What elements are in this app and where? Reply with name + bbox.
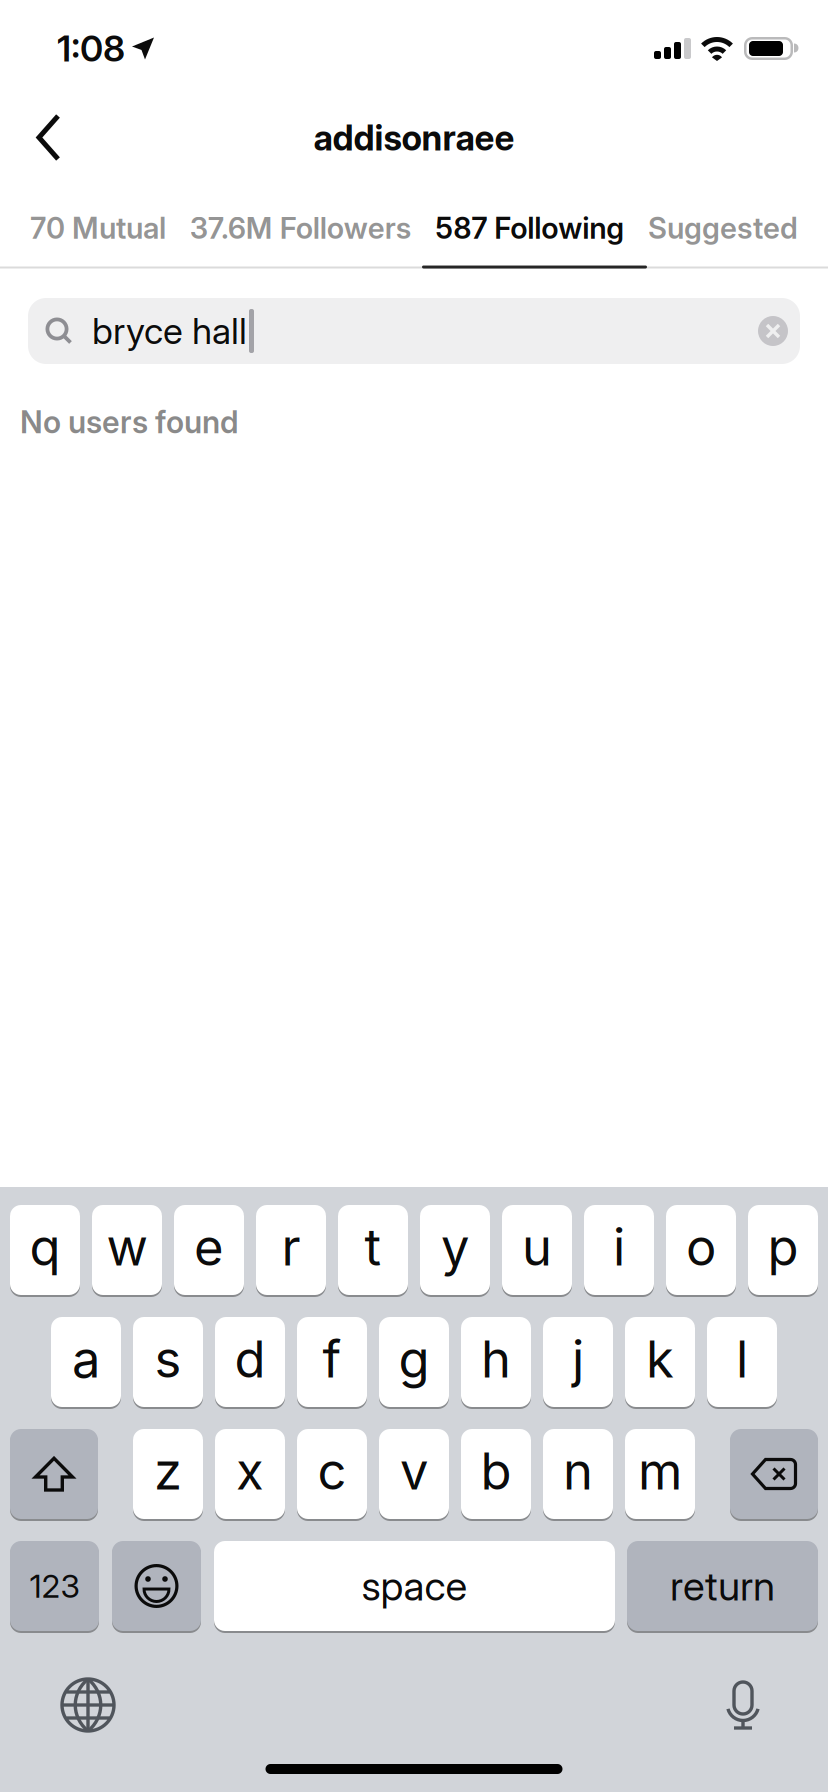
button[interactable]: Shift (10, 1429, 98, 1521)
button[interactable]: a (51, 1317, 121, 1409)
staticText: a (72, 1329, 100, 1389)
staticText: No users found (20, 404, 239, 440)
button[interactable]: Numbers (10, 1541, 99, 1633)
staticText: bryce hall (92, 310, 247, 352)
staticText: return (670, 1562, 775, 1610)
staticText: e (194, 1217, 224, 1277)
staticText: y (441, 1217, 469, 1277)
button[interactable]: Back (0, 114, 81, 162)
button[interactable]: y (420, 1205, 490, 1297)
button[interactable]: Search (28, 298, 800, 364)
staticText: 37.6M Followers (190, 211, 412, 245)
staticText: m (638, 1441, 682, 1501)
staticText: f (322, 1329, 341, 1389)
staticText: 1:08 (57, 27, 125, 70)
button[interactable]: z (133, 1429, 203, 1521)
button[interactable]: d (215, 1317, 285, 1409)
button[interactable]: v (379, 1429, 449, 1521)
button[interactable]: return (627, 1541, 818, 1633)
button[interactable]: h (461, 1317, 531, 1409)
button[interactable]: e (174, 1205, 244, 1297)
staticText: h (481, 1329, 511, 1389)
staticText: t (364, 1217, 381, 1277)
staticText: 587 Following (435, 211, 624, 245)
staticText: p (767, 1217, 798, 1277)
button[interactable]: 70 Mutual (30, 211, 166, 245)
staticText: d (234, 1329, 265, 1389)
staticText: 70 Mutual (30, 211, 166, 245)
button[interactable]: c (297, 1429, 367, 1521)
button[interactable]: k (625, 1317, 695, 1409)
staticText: o (686, 1217, 716, 1277)
button[interactable]: s (133, 1317, 203, 1409)
button[interactable]: r (256, 1205, 326, 1297)
button[interactable]: n (543, 1429, 613, 1521)
staticText: g (398, 1329, 429, 1389)
button[interactable]: p (748, 1205, 818, 1297)
button[interactable]: Emoji (112, 1541, 201, 1633)
button[interactable]: Next keyboard (0, 1677, 116, 1733)
staticText: j (572, 1329, 584, 1389)
button[interactable]: Suggested (648, 211, 798, 245)
button[interactable]: 37.6M Followers (190, 211, 412, 245)
staticText: x (236, 1441, 264, 1501)
button[interactable]: space (214, 1541, 615, 1633)
button[interactable]: Delete (730, 1429, 818, 1521)
button[interactable]: t (338, 1205, 408, 1297)
staticText: z (154, 1441, 182, 1501)
button[interactable]: x (215, 1429, 285, 1521)
staticText: Suggested (648, 211, 798, 245)
staticText: addisonraee (313, 118, 514, 158)
staticText: u (522, 1217, 552, 1277)
button[interactable]: Clear search text (758, 316, 788, 346)
button[interactable]: o (666, 1205, 736, 1297)
staticText: space (361, 1562, 467, 1610)
button[interactable]: i (584, 1205, 654, 1297)
staticText: v (400, 1441, 428, 1501)
button[interactable]: 587 Following (435, 211, 624, 245)
button[interactable]: u (502, 1205, 572, 1297)
staticText: c (317, 1441, 346, 1501)
staticText: s (154, 1329, 181, 1389)
button[interactable]: l (707, 1317, 777, 1409)
staticText: i (613, 1217, 625, 1277)
staticText: k (646, 1329, 674, 1389)
button[interactable]: f (297, 1317, 367, 1409)
staticText: l (736, 1329, 748, 1389)
button[interactable]: b (461, 1429, 531, 1521)
button[interactable]: m (625, 1429, 695, 1521)
button[interactable]: Dictate (726, 1680, 828, 1730)
button[interactable]: j (543, 1317, 613, 1409)
button[interactable]: q (10, 1205, 80, 1297)
staticText: r (281, 1217, 300, 1277)
staticText: n (563, 1441, 593, 1501)
staticText: b (480, 1441, 511, 1501)
staticText: q (29, 1217, 60, 1277)
button[interactable]: g (379, 1317, 449, 1409)
staticText: 123 (29, 1567, 79, 1605)
staticText: w (106, 1217, 147, 1277)
button[interactable]: w (92, 1205, 162, 1297)
